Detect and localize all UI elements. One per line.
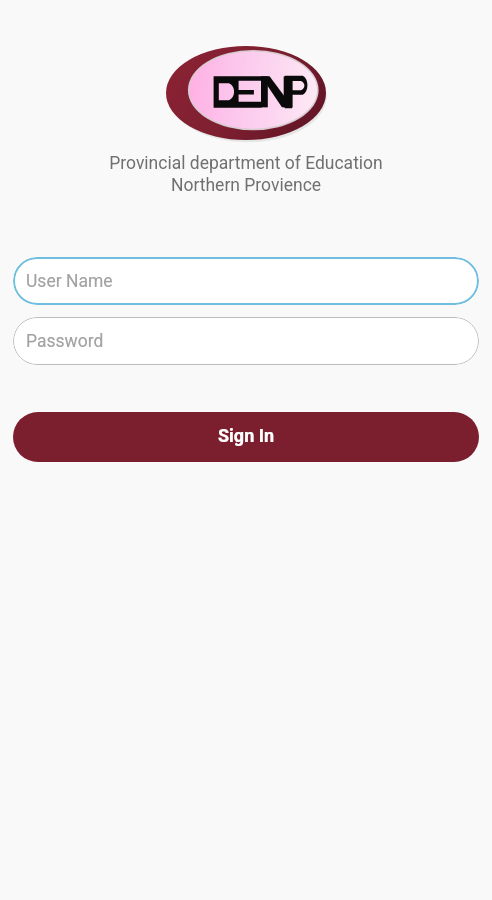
staticText: Password [26,331,104,352]
button[interactable]: User Name [13,257,479,305]
staticText: Provincial department of Education North… [0,153,492,196]
button[interactable]: Password [13,317,479,365]
staticText: Sign In [218,425,275,446]
staticText: User Name [26,271,113,292]
button[interactable]: Sign In [13,412,479,462]
